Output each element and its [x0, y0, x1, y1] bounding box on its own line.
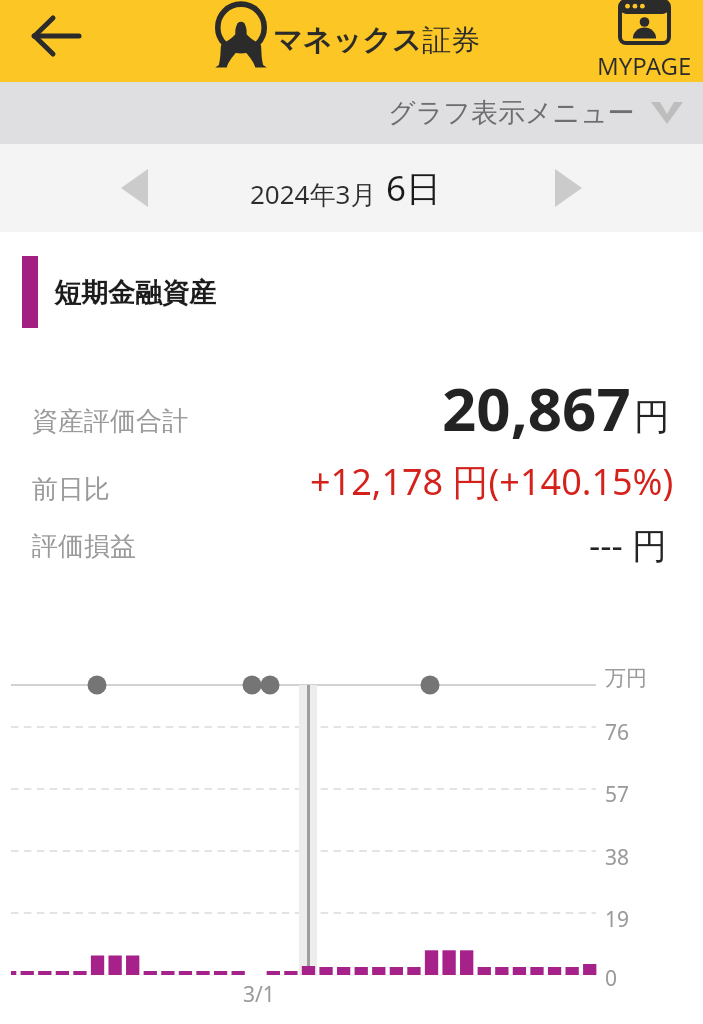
- staticText: 38: [605, 843, 630, 872]
- staticText: 2024年3月: [250, 176, 377, 212]
- staticText: 6日: [377, 164, 442, 212]
- button[interactable]: MYPAGE: [597, 0, 692, 78]
- staticText: 前日比: [32, 473, 110, 506]
- staticText: 0: [605, 964, 618, 993]
- staticText: +12,178 円(+140.15%): [310, 457, 674, 506]
- staticText: 万円: [605, 665, 647, 691]
- staticText: --- 円: [589, 521, 667, 569]
- staticText: グラフ表示メニュー: [388, 96, 635, 130]
- staticText: 19: [605, 905, 630, 934]
- staticText: 円: [634, 394, 670, 439]
- staticText: 76: [605, 718, 630, 747]
- button[interactable]: グラフ表示メニュー: [0, 82, 703, 144]
- staticText: 短期金融資産: [54, 276, 216, 310]
- staticText: 20,867: [442, 367, 631, 449]
- staticText: MYPAGE: [597, 49, 692, 82]
- staticText: 57: [605, 780, 630, 809]
- staticText: 3/1: [243, 980, 275, 1009]
- staticText: 評価損益: [32, 530, 136, 563]
- staticText: マネックス: [273, 22, 422, 59]
- button[interactable]: Next day: [539, 159, 597, 217]
- staticText: 証券: [422, 22, 480, 59]
- button[interactable]: Previous day: [105, 159, 163, 217]
- staticText: 資産評価合計: [32, 405, 188, 438]
- button[interactable]: Back: [23, 3, 89, 69]
